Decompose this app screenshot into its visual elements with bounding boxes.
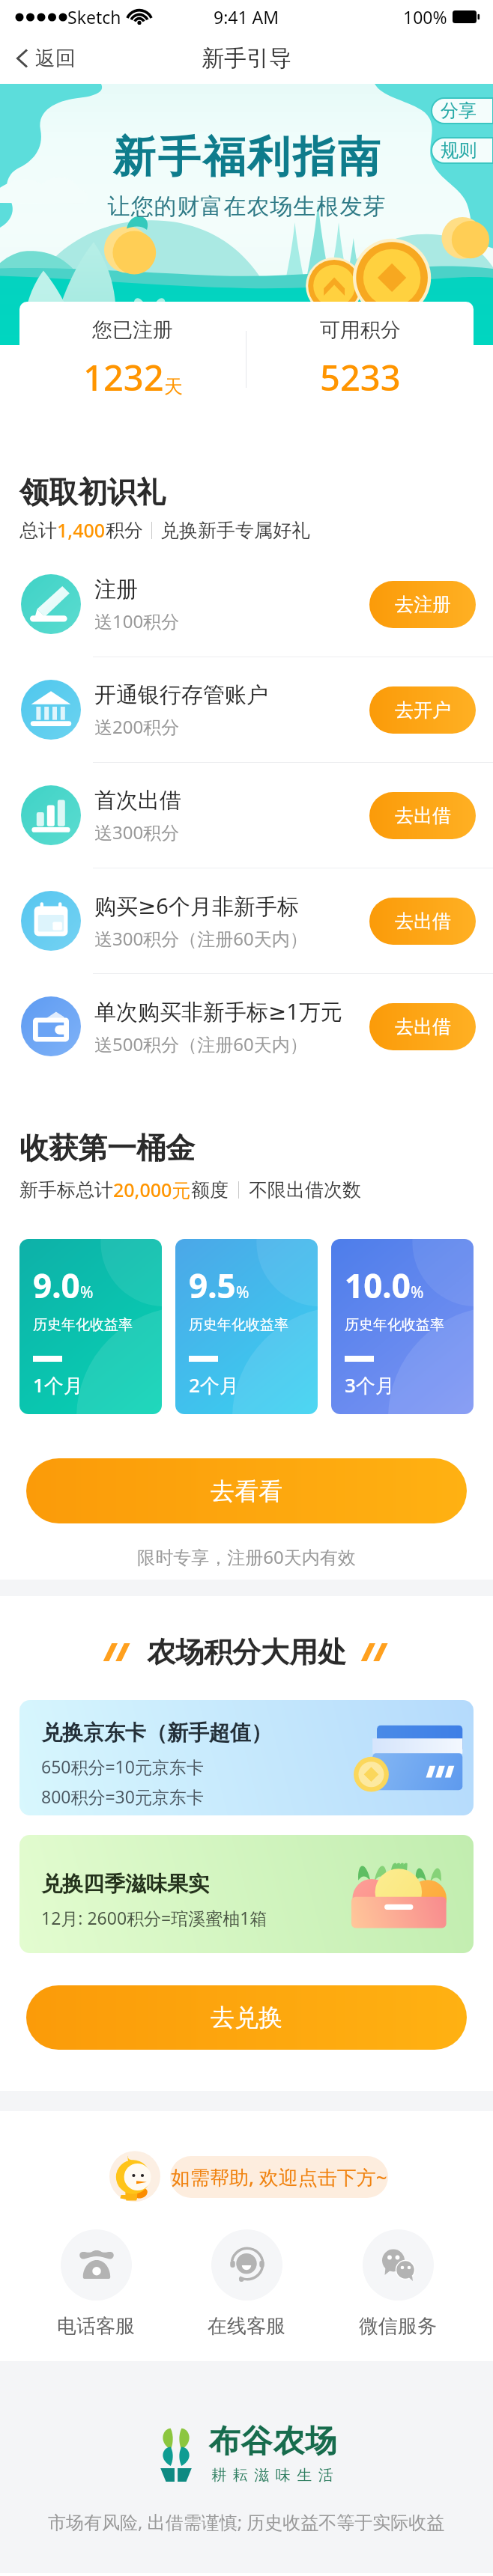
staticText: 送300积分（注册60天内） (94, 926, 308, 951)
button[interactable]: 去兑换 (26, 1985, 467, 2050)
button[interactable]: 去出借 (369, 1003, 476, 1050)
staticText: 您已注册 (92, 317, 173, 343)
staticText: 农场积分大用处 (147, 1634, 346, 1670)
staticText: 历史年化收益率 (189, 1316, 288, 1334)
button[interactable]: 在线客服 (191, 2229, 302, 2339)
staticText: 让您的财富在农场生根发芽 (107, 192, 386, 221)
staticText: 购买≥6个月非新手标 (94, 891, 299, 921)
staticText: 去出借 (395, 910, 451, 933)
staticText: 去注册 (395, 593, 451, 616)
staticText: 2个月 (189, 1371, 239, 1398)
staticText: 布谷农场 (208, 2422, 337, 2461)
staticText: % (411, 1282, 424, 1303)
staticText: % (80, 1282, 94, 1303)
button[interactable]: 去看看 (26, 1458, 467, 1523)
staticText: 9.5 (189, 1263, 236, 1308)
staticText: 市场有风险, 出借需谨慎; 历史收益不等于实际收益 (48, 2509, 445, 2534)
staticText: 10.0 (345, 1263, 411, 1308)
button[interactable]: 电话客服 (40, 2229, 151, 2339)
staticText: 1,400 (57, 517, 106, 543)
staticText: % (236, 1282, 249, 1303)
staticText: 历史年化收益率 (345, 1316, 444, 1334)
staticText: 注册 (94, 576, 138, 603)
staticText: 100% (403, 5, 447, 28)
button[interactable]: 兑换京东卡（新手超值） (19, 1700, 474, 1815)
staticText: 限时专享，注册60天内有效 (0, 1544, 493, 1569)
staticText: 去出借 (395, 804, 451, 827)
staticText: 去开户 (395, 698, 451, 722)
button[interactable]: 去出借 (369, 898, 476, 945)
staticText: 新手福利指南 (112, 130, 381, 184)
staticText: 兑换四季滋味果实 (41, 1871, 209, 1897)
button[interactable]: 兑换四季滋味果实 (19, 1835, 474, 1953)
staticText: 领取初识礼 (19, 474, 166, 511)
staticText: 送300积分 (94, 820, 180, 844)
staticText: 9.0 (33, 1263, 80, 1308)
staticText: 开通银行存管账户 (94, 681, 268, 709)
staticText: 耕耘滋味生活 (208, 2466, 336, 2485)
staticText: 800积分=30元京东卡 (41, 1785, 204, 1808)
button[interactable]: 分享 (432, 98, 493, 124)
staticText: 天 (164, 375, 183, 398)
button[interactable]: 去出借 (369, 792, 476, 839)
staticText: 3个月 (345, 1371, 395, 1398)
button[interactable]: 去注册 (369, 581, 476, 628)
staticText: 去看看 (211, 1476, 282, 1506)
staticText: 积分 (106, 519, 143, 542)
button[interactable]: 微信服务 (342, 2229, 453, 2339)
staticText: 兑换京东卡（新手超值） (41, 1720, 272, 1746)
staticText: 返回 (35, 46, 76, 71)
staticText: Sketch (67, 5, 121, 28)
staticText: 9:41 AM (214, 5, 279, 28)
button[interactable]: 开通银行存管账户 (0, 657, 493, 762)
button[interactable]: 规则 (432, 138, 493, 163)
staticText: 5233 (320, 353, 401, 401)
staticText: 去出借 (395, 1015, 451, 1038)
staticText: 在线客服 (208, 2314, 285, 2339)
staticText: 送200积分 (94, 714, 180, 739)
staticText: 如需帮助, 欢迎点击下方~ (171, 2164, 387, 2190)
staticText: 不限出借次数 (249, 1178, 361, 1202)
staticText: 650积分=10元京东卡 (41, 1755, 204, 1778)
button[interactable]: 购买≥6个月非新手标 (0, 868, 493, 973)
staticText: 电话客服 (57, 2314, 135, 2339)
button[interactable]: 注册 (0, 552, 493, 657)
staticText: 兑换新手专属好礼 (160, 519, 310, 542)
staticText: 总计 (19, 519, 57, 542)
staticText: 首次出借 (94, 787, 181, 814)
staticText: 收获第一桶金 (19, 1130, 195, 1166)
button[interactable]: 9.5 (175, 1239, 318, 1414)
button[interactable]: 返回 (0, 33, 91, 84)
button[interactable]: 10.0 (331, 1239, 474, 1414)
staticText: 规则 (441, 139, 477, 162)
button[interactable]: 9.0 (19, 1239, 162, 1414)
button[interactable]: 单次购买非新手标≥1万元 (0, 974, 493, 1079)
staticText: 单次购买非新手标≥1万元 (94, 996, 342, 1026)
button[interactable]: 去开户 (369, 686, 476, 734)
staticText: 送500积分（注册60天内） (94, 1032, 308, 1056)
staticText: 12月: 2600积分=琯溪蜜柚1箱 (41, 1906, 267, 1929)
staticText: 新手引导 (202, 44, 291, 73)
staticText: 1232 (83, 353, 164, 401)
button[interactable]: 首次出借 (0, 763, 493, 868)
staticText: 历史年化收益率 (33, 1316, 133, 1334)
staticText: 额度 (191, 1178, 229, 1202)
staticText: 新手标总计 (19, 1178, 113, 1202)
staticText: 去兑换 (211, 2003, 282, 2033)
staticText: 可用积分 (320, 317, 401, 343)
staticText: 1个月 (33, 1371, 83, 1398)
staticText: 微信服务 (359, 2314, 437, 2339)
staticText: 送100积分 (94, 609, 180, 633)
staticText: 分享 (441, 100, 477, 122)
staticText: 20,000元 (113, 1177, 191, 1202)
